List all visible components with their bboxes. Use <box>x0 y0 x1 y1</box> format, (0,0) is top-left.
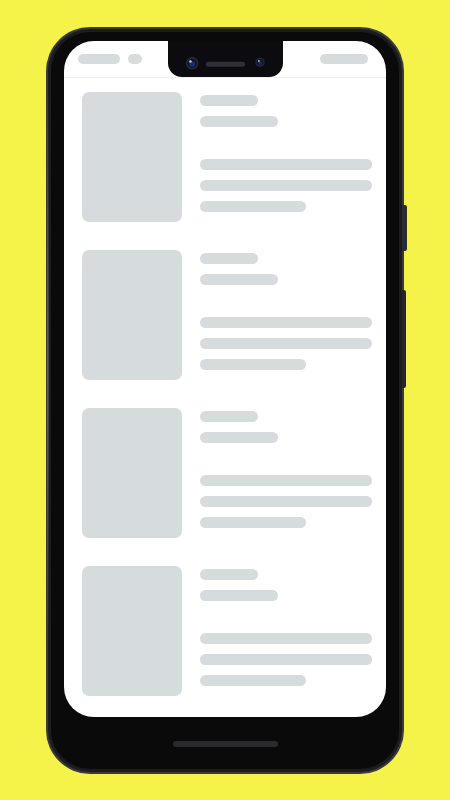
button[interactable] <box>64 236 386 394</box>
button[interactable] <box>64 552 386 710</box>
button[interactable] <box>64 394 386 552</box>
button[interactable] <box>64 78 386 236</box>
button[interactable]: Volume <box>402 290 406 388</box>
button[interactable]: Power <box>402 205 407 251</box>
